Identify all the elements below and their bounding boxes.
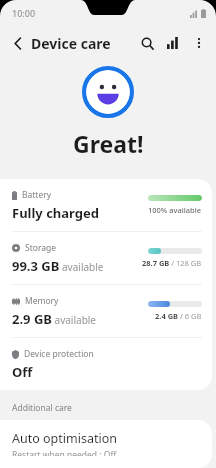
staticText: Additional care: [12, 402, 72, 414]
staticText: 100% available: [148, 205, 202, 215]
staticText: Fully charged: [12, 204, 99, 222]
staticText: Memory: [25, 295, 59, 307]
button[interactable]: Battery: [0, 179, 212, 231]
staticText: Off: [12, 363, 33, 381]
staticText: Restart when needed : Off: [12, 449, 117, 456]
staticText: 2.9 GB available: [12, 310, 97, 328]
button[interactable]: Auto optimisation: [0, 420, 212, 468]
staticText: Device protection: [24, 348, 94, 360]
button[interactable]: Search: [134, 30, 160, 56]
staticText: 28.7 GB / 128 GB: [142, 258, 202, 268]
staticText: Battery: [22, 189, 52, 201]
staticText: Device care: [31, 34, 111, 53]
button[interactable]: Back: [4, 29, 32, 57]
button[interactable]: More options: [186, 30, 212, 56]
button[interactable]: Memory: [0, 285, 212, 337]
staticText: 10:00: [12, 7, 36, 19]
staticText: Auto optimisation: [12, 430, 117, 447]
staticText: Great!: [73, 128, 144, 159]
staticText: Storage: [25, 242, 57, 254]
staticText: 2.4 GB / 6 GB: [155, 311, 202, 321]
button[interactable]: Device protection: [0, 338, 212, 390]
button[interactable]: Storage: [0, 232, 212, 284]
button[interactable]: Usage statistics: [160, 30, 186, 56]
staticText: 99.3 GB available: [12, 257, 104, 275]
